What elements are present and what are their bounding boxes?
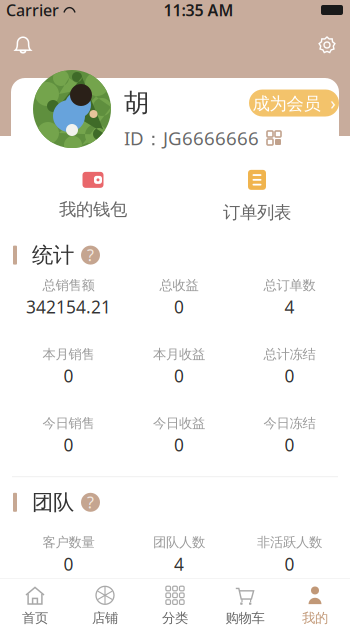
staticText: ? — [87, 244, 94, 266]
staticText: 团队 — [32, 489, 74, 515]
staticText: 总订单数 — [263, 277, 315, 293]
staticText: ? — [87, 492, 94, 513]
button[interactable]: 订单列表 — [175, 169, 339, 223]
button[interactable]: 我的 — [280, 580, 350, 630]
staticText: 0 — [63, 364, 73, 387]
staticText: 0 — [284, 364, 294, 387]
staticText: 今日冻结 — [263, 415, 315, 431]
staticText: 订单列表 — [223, 202, 291, 223]
staticText: 今日销售 — [42, 415, 94, 431]
button[interactable]: 分类 — [140, 580, 210, 630]
staticText: 总计冻结 — [263, 346, 315, 362]
staticText: 成为会员 › — [252, 91, 335, 114]
staticText: 0 — [174, 433, 184, 456]
button[interactable]: 成为会员 › — [249, 89, 339, 116]
staticText: 非活跃人数 — [257, 534, 322, 551]
staticText: 今日收益 — [153, 415, 205, 431]
staticText: 0 — [284, 552, 294, 575]
button[interactable]: Notifications — [7, 30, 39, 60]
staticText: 0 — [174, 295, 184, 318]
staticText: 11:35 AM — [163, 0, 233, 21]
staticText: 分类 — [162, 610, 188, 626]
button[interactable]: Settings — [311, 30, 343, 60]
staticText: 总收益 — [159, 277, 198, 293]
staticText: 我的钱包 — [59, 199, 127, 220]
staticText: 我的 — [302, 610, 328, 626]
button[interactable]: 店铺 — [70, 580, 140, 630]
staticText: ID：JG6666666 — [124, 126, 259, 150]
staticText: 胡 — [124, 87, 149, 118]
staticText: 4 — [174, 552, 184, 575]
staticText: 统计 — [32, 242, 74, 268]
staticText: 团队人数 — [153, 534, 205, 551]
staticText: 总销售额 — [42, 277, 94, 293]
staticText: 购物车 — [225, 610, 264, 626]
button[interactable]: 我的钱包 — [11, 169, 175, 223]
staticText: 4 — [284, 295, 294, 318]
staticText: 0 — [63, 433, 73, 456]
staticText: 本月销售 — [42, 346, 94, 362]
staticText: 本月收益 — [153, 346, 205, 362]
staticText: 客户数量 — [42, 534, 94, 551]
staticText: 0 — [63, 552, 73, 575]
staticText: 0 — [174, 364, 184, 387]
staticText: 首页 — [22, 610, 48, 626]
staticText: 342154.21 — [26, 295, 111, 318]
button[interactable]: 首页 — [0, 580, 70, 630]
staticText: Carrier — [6, 0, 59, 21]
staticText: 店铺 — [92, 610, 118, 626]
staticText: 0 — [284, 433, 294, 456]
button[interactable]: 购物车 — [210, 580, 280, 630]
